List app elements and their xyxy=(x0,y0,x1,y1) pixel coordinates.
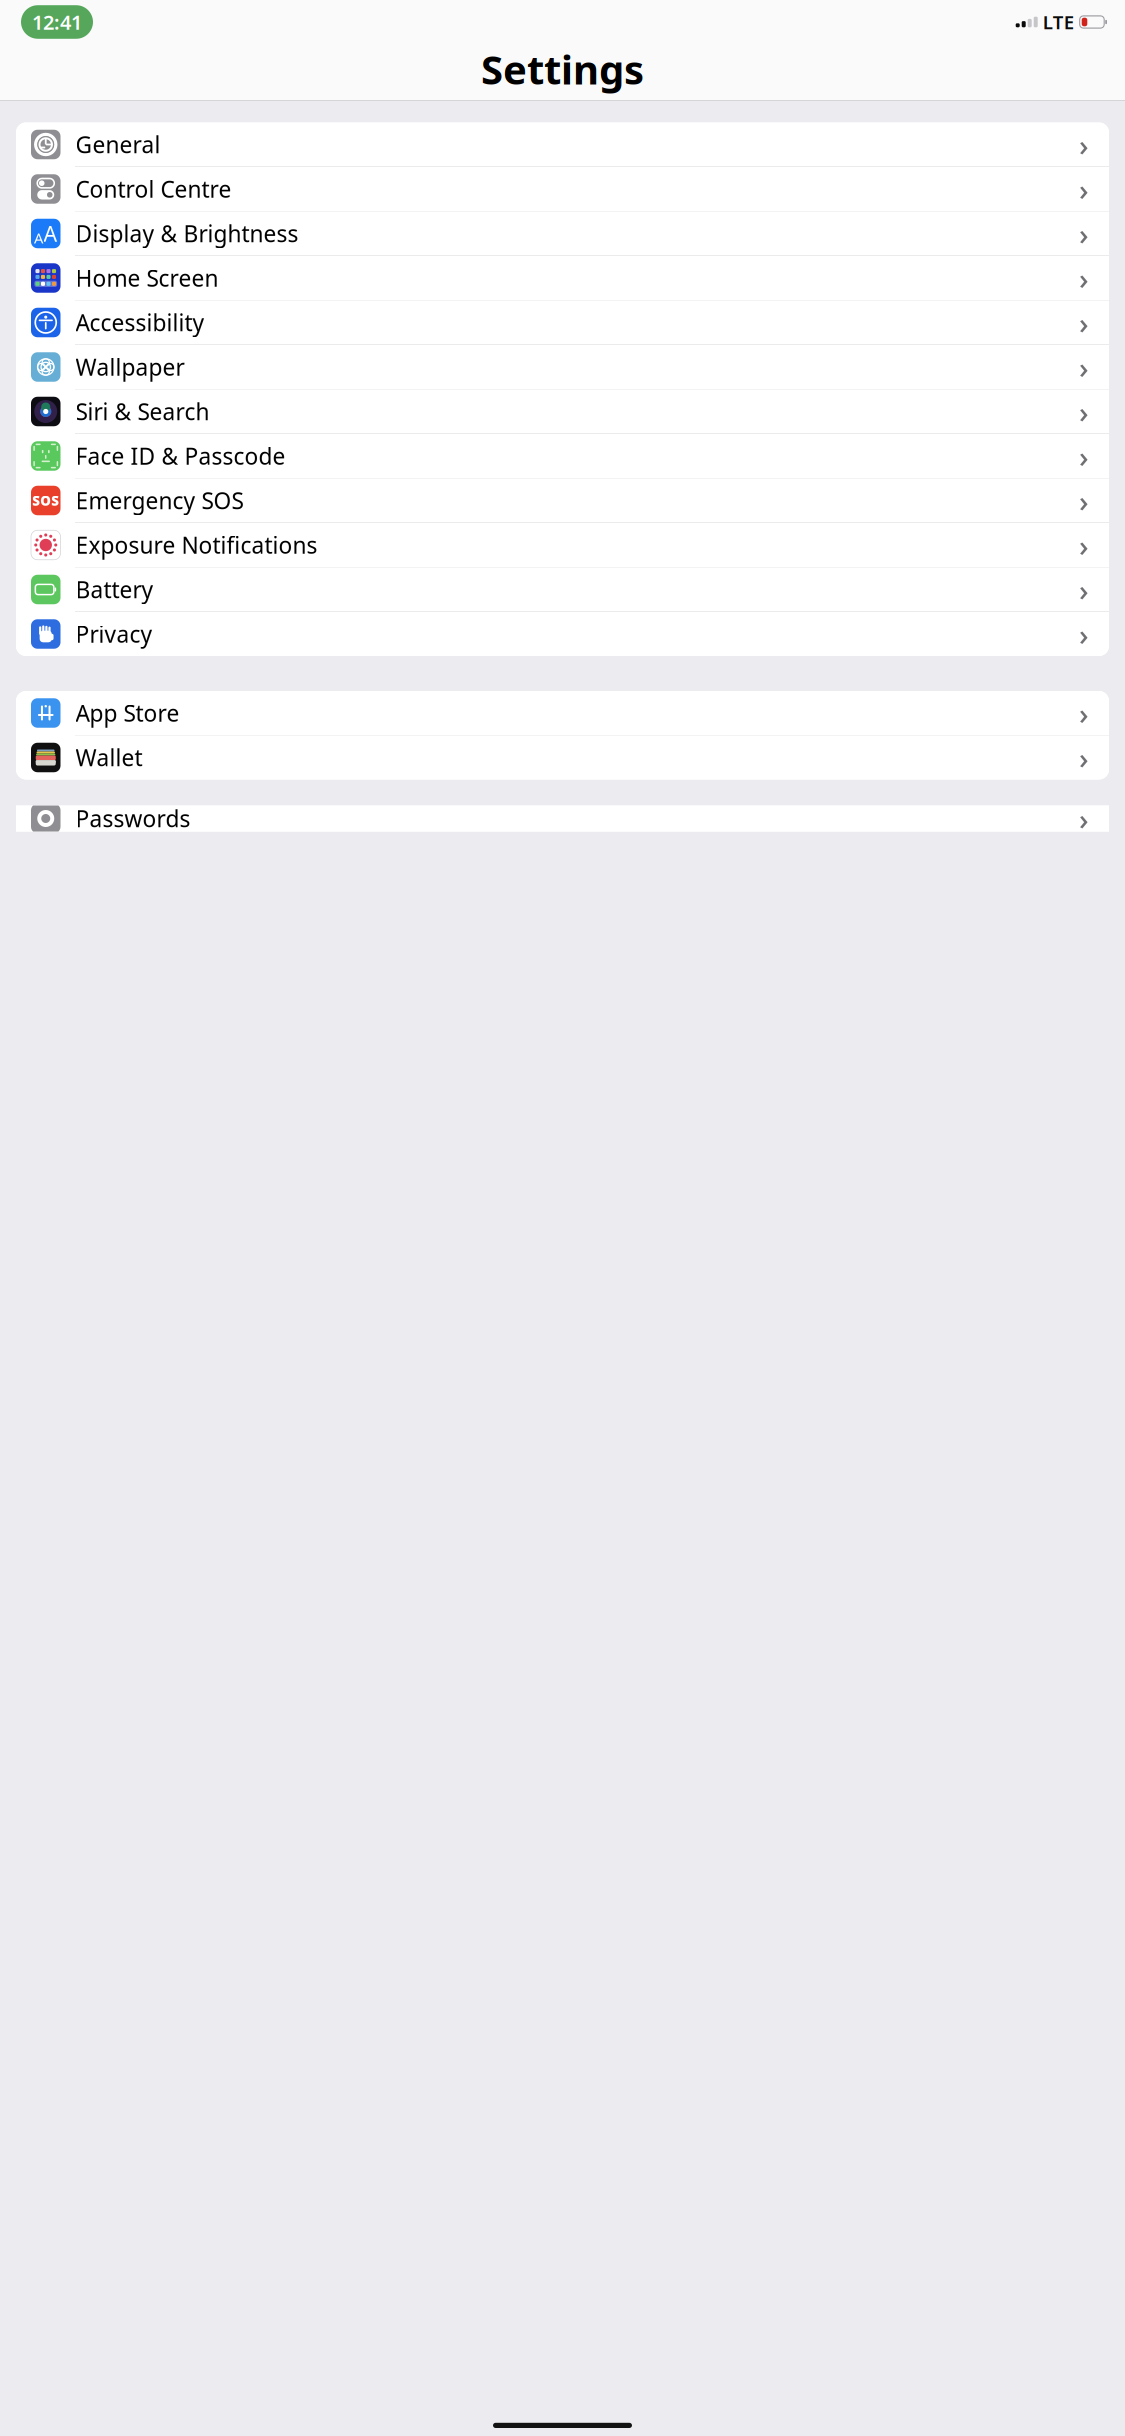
button[interactable]: Wallet xyxy=(16,735,1109,779)
staticText: Face ID & Passcode xyxy=(75,441,285,471)
staticText: Display & Brightness xyxy=(75,218,298,248)
staticText: › xyxy=(1079,214,1089,253)
button[interactable]: Wallpaper xyxy=(16,345,1109,389)
staticText: › xyxy=(1079,392,1089,431)
button[interactable]: App Store xyxy=(16,691,1109,735)
staticText: General xyxy=(75,129,160,159)
staticText: › xyxy=(1079,347,1089,386)
staticText: A xyxy=(34,228,43,248)
staticText: › xyxy=(1079,125,1089,164)
staticText: › xyxy=(1079,436,1089,475)
staticText: LTE xyxy=(1043,10,1074,34)
staticText: Settings xyxy=(481,42,644,95)
staticText: Emergency SOS xyxy=(75,485,243,515)
button[interactable]: Siri & Search xyxy=(16,389,1109,434)
staticText: › xyxy=(1079,303,1089,342)
staticText: › xyxy=(1079,738,1089,777)
button[interactable]: Privacy xyxy=(16,612,1109,656)
button[interactable]: Accessibility xyxy=(16,300,1109,345)
button[interactable]: A xyxy=(16,211,1109,256)
button[interactable]: Battery xyxy=(16,567,1109,612)
staticText: Passwords xyxy=(75,803,190,833)
staticText: › xyxy=(1079,481,1089,520)
staticText: › xyxy=(1079,169,1089,208)
button[interactable]: Control Centre xyxy=(16,167,1109,211)
button[interactable]: SOS xyxy=(16,478,1109,523)
staticText: Battery xyxy=(75,574,153,604)
button[interactable]: Exposure Notifications xyxy=(16,523,1109,567)
staticText: Home Screen xyxy=(75,263,218,293)
staticText: Siri & Search xyxy=(75,396,209,426)
staticText: › xyxy=(1079,614,1089,653)
staticText: 12:41 xyxy=(32,9,82,35)
staticText: Exposure Notifications xyxy=(75,530,317,560)
staticText: Accessibility xyxy=(75,307,204,337)
button[interactable]: Face ID & Passcode xyxy=(16,434,1109,478)
staticText: › xyxy=(1079,525,1089,564)
staticText: › xyxy=(1079,258,1089,297)
button[interactable]: General xyxy=(16,122,1109,167)
staticText: › xyxy=(1079,693,1089,732)
staticText: Privacy xyxy=(75,619,152,649)
staticText: › xyxy=(1079,799,1089,838)
staticText: A xyxy=(43,219,57,248)
staticText: SOS xyxy=(32,492,59,509)
staticText: Wallpaper xyxy=(75,352,184,382)
button[interactable]: Home Screen xyxy=(16,256,1109,300)
staticText: Wallet xyxy=(75,742,142,772)
staticText: App Store xyxy=(75,698,179,728)
staticText: Control Centre xyxy=(75,174,231,204)
button[interactable]: Passwords xyxy=(16,796,1109,840)
staticText: › xyxy=(1079,570,1089,609)
